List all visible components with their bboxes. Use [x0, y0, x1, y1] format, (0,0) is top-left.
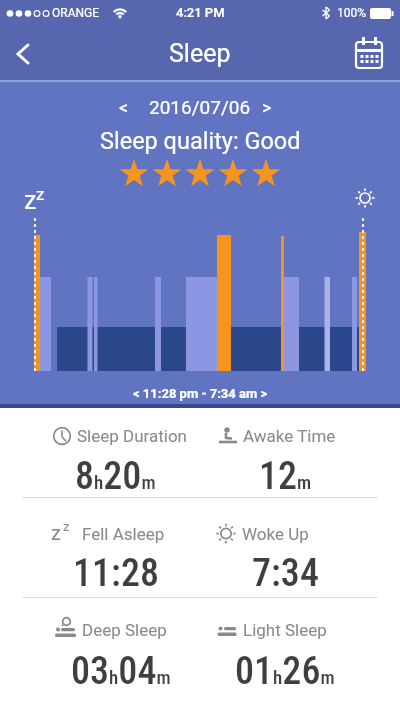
- staticText: >: [262, 97, 272, 118]
- staticText: z: [36, 184, 45, 204]
- staticText: Sleep: [169, 39, 231, 68]
- staticText: 03h04m: [71, 649, 171, 694]
- staticText: 01h26m: [235, 649, 335, 694]
- staticText: z: [24, 186, 37, 215]
- staticText: Woke Up: [242, 524, 309, 544]
- staticText: Awake Time: [243, 426, 336, 446]
- staticText: < 11:28 pm - 7:34 am >: [133, 386, 268, 401]
- staticText: Light Sleep: [243, 620, 327, 640]
- staticText: Fell Asleep: [82, 524, 165, 544]
- button[interactable]: [348, 34, 392, 74]
- staticText: 4:21 PM: [176, 5, 225, 20]
- staticText: z: [63, 519, 70, 534]
- staticText: 8h20m: [75, 454, 156, 499]
- staticText: 12m: [259, 454, 312, 499]
- staticText: 11:28: [73, 551, 159, 596]
- staticText: Sleep quality: Good: [100, 127, 301, 155]
- staticText: 2016/07/06: [149, 96, 251, 118]
- staticText: Deep Sleep: [82, 620, 167, 640]
- staticText: 7:34: [252, 551, 319, 596]
- staticText: z: [51, 521, 61, 544]
- staticText: Sleep Duration: [77, 426, 188, 446]
- staticText: ORANGE: [52, 6, 100, 20]
- staticText: <: [119, 97, 129, 118]
- button[interactable]: [8, 36, 48, 76]
- staticText: 100%: [337, 6, 367, 20]
- button[interactable]: <: [100, 96, 290, 118]
